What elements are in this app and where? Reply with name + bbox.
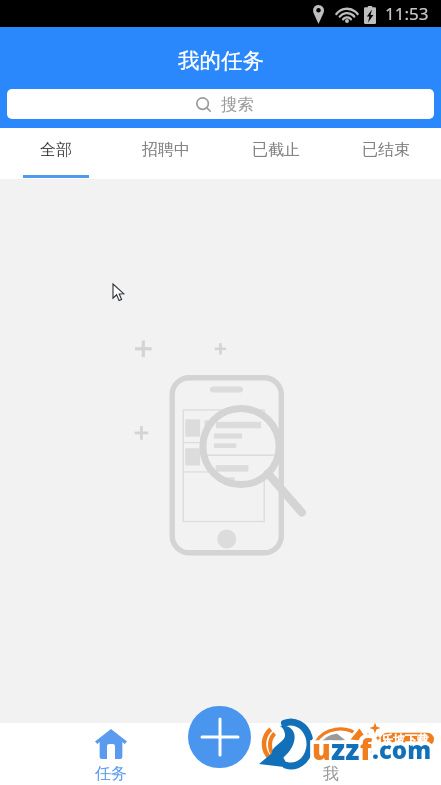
button[interactable]: 搜索: [7, 89, 434, 119]
staticText: f: [360, 730, 372, 768]
staticText: .com: [372, 733, 432, 766]
staticText: 11:53: [385, 2, 429, 25]
staticText: 招聘中: [142, 140, 190, 160]
button[interactable]: 招聘中: [111, 128, 221, 179]
button[interactable]: 任务: [60, 723, 161, 785]
staticText: 我的任务: [178, 47, 264, 74]
button[interactable]: 已截止: [221, 128, 331, 179]
staticText: zz: [331, 730, 360, 768]
button[interactable]: 已结束: [331, 128, 441, 179]
staticText: 已结束: [362, 140, 410, 160]
staticText: uzzf: [312, 730, 371, 768]
button[interactable]: Add task: [188, 706, 251, 768]
staticText: 全部: [40, 140, 72, 160]
staticText: u: [312, 730, 331, 768]
staticText: 任务: [95, 764, 127, 784]
staticText: .com: [372, 733, 432, 766]
staticText: 我: [323, 764, 339, 784]
staticText: 搜索: [221, 94, 254, 115]
button[interactable]: 全部: [0, 128, 111, 179]
button[interactable]: 我: [280, 723, 381, 785]
staticText: 已截止: [252, 140, 300, 160]
staticText: 乐坡下载: [381, 732, 429, 747]
